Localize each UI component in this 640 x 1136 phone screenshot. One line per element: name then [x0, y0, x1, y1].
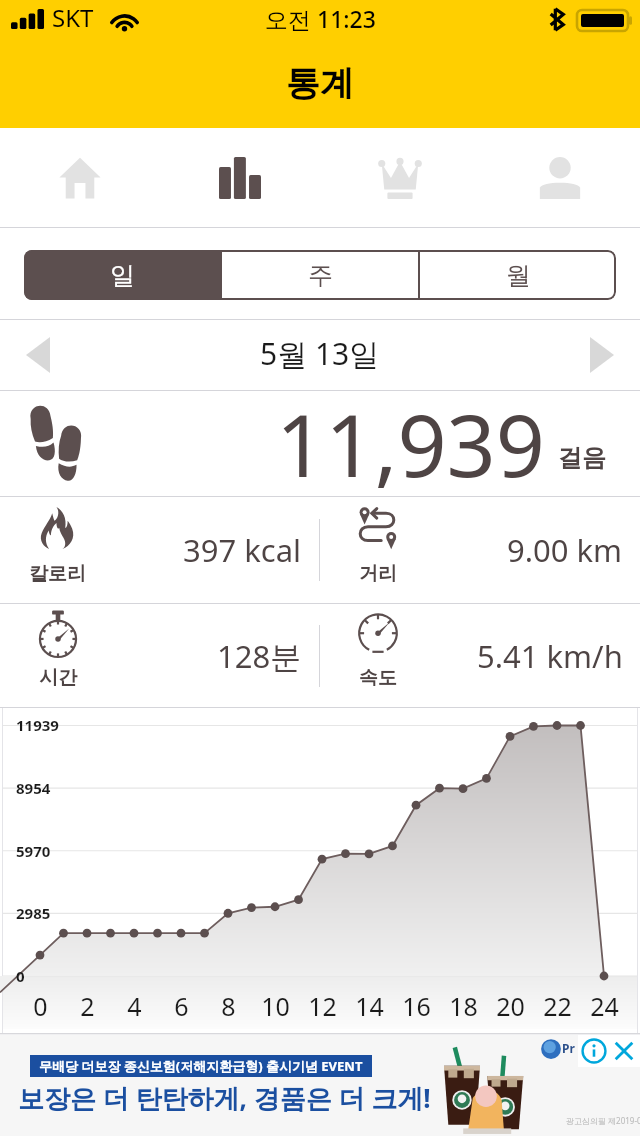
staticText: 11939 — [16, 715, 59, 735]
button[interactable]: Statistics — [160, 128, 320, 227]
staticText: 5.41 km/h — [477, 635, 623, 677]
staticText: 2985 — [16, 903, 51, 923]
staticText: 22 — [543, 989, 572, 1023]
button[interactable]: Ad info — [581, 1038, 607, 1064]
staticText: 거리 — [359, 562, 397, 586]
button[interactable]: Next day — [564, 320, 640, 390]
button[interactable]: 무배당 더보장 종신보험(저해지환급형) 출시기념 EVENT — [0, 1035, 640, 1136]
staticText: 11,939 — [276, 385, 546, 490]
staticText: 2 — [80, 989, 95, 1023]
staticText: 18 — [449, 989, 478, 1023]
staticText: 월 — [506, 260, 531, 291]
staticText: 10 — [261, 989, 290, 1023]
button[interactable]: Profile — [480, 128, 640, 227]
staticText: 16 — [402, 989, 431, 1023]
staticText: 광고심의필 제2019-00000호 — [566, 1115, 640, 1126]
staticText: 5970 — [16, 841, 51, 861]
staticText: 칼로리 — [29, 562, 86, 586]
button[interactable]: 일 — [24, 250, 220, 300]
staticText: 0 — [16, 966, 25, 986]
staticText: 9.00 km — [507, 529, 623, 571]
button[interactable]: Close ad — [611, 1038, 637, 1064]
staticText: 오전 11:23 — [265, 3, 376, 34]
staticText: 일 — [110, 260, 135, 291]
staticText: 6 — [174, 989, 189, 1023]
staticText: 보장은 더 탄탄하게, 경품은 더 크게! — [18, 1080, 431, 1116]
button[interactable]: Previous day — [0, 320, 76, 390]
staticText: 속도 — [359, 666, 397, 690]
button[interactable]: Home — [0, 128, 160, 227]
staticText: Pr — [562, 1040, 575, 1056]
staticText: 20 — [496, 989, 525, 1023]
staticText: 128분 — [217, 635, 302, 677]
button[interactable]: 주 — [222, 250, 418, 300]
staticText: 주 — [308, 260, 333, 291]
staticText: 8954 — [16, 778, 51, 798]
staticText: SKT — [52, 1, 94, 34]
staticText: 397 kcal — [183, 529, 302, 571]
staticText: 시간 — [39, 666, 77, 690]
staticText: 12 — [308, 989, 337, 1023]
staticText: 통계 — [286, 62, 354, 105]
button[interactable]: 월 — [420, 250, 616, 300]
staticText: 24 — [590, 989, 619, 1023]
staticText: 14 — [355, 989, 384, 1023]
staticText: 걸음 — [558, 443, 606, 473]
staticText: 무배당 더보장 종신보험(저해지환급형) 출시기념 EVENT — [39, 1057, 363, 1075]
staticText: 8 — [221, 989, 236, 1023]
button[interactable]: Ranking — [320, 128, 480, 227]
staticText: 4 — [127, 989, 142, 1023]
staticText: 5월 13일 — [260, 333, 380, 374]
staticText: 0 — [33, 989, 48, 1023]
